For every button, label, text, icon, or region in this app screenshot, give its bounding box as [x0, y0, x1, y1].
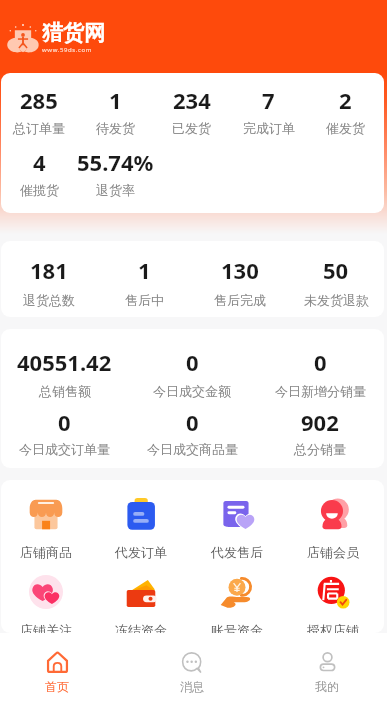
staticText: 234	[173, 85, 211, 115]
staticText: 今日成交订单量	[19, 441, 110, 457]
button[interactable]: 50	[288, 255, 384, 308]
staticText: 0	[314, 347, 327, 377]
button[interactable]: 代发订单	[93, 497, 189, 560]
staticText: www.59ds.com	[42, 46, 92, 54]
button[interactable]: 店铺商品	[1, 497, 93, 560]
button[interactable]: 234	[153, 85, 230, 136]
staticText: 完成订单	[243, 120, 295, 136]
staticText: 店铺商品	[20, 544, 72, 560]
staticText: 1	[109, 85, 122, 115]
staticText: 总销售额	[39, 383, 91, 399]
button[interactable]: 285	[1, 85, 77, 136]
button[interactable]: 902	[256, 407, 384, 457]
button[interactable]: 0	[128, 347, 256, 399]
staticText: 代发售后	[211, 544, 263, 560]
button[interactable]: 7	[230, 85, 307, 136]
button[interactable]: 55.74%	[77, 147, 154, 198]
staticText: 0	[58, 407, 71, 437]
button[interactable]: 1	[77, 85, 153, 136]
staticText: 待发货	[96, 120, 135, 136]
staticText: 总订单量	[13, 120, 65, 136]
staticText: 4	[33, 147, 46, 177]
staticText: 0	[186, 347, 199, 377]
staticText: 退货率	[96, 182, 135, 198]
button[interactable]: 0	[128, 407, 256, 457]
button[interactable]: 首页	[25, 633, 89, 706]
staticText: 我的	[315, 679, 339, 694]
staticText: 2	[339, 85, 352, 115]
staticText: 授权店铺	[307, 622, 359, 633]
staticText: 55.74%	[77, 147, 154, 177]
staticText: 7	[262, 85, 275, 115]
staticText: 181	[30, 255, 68, 285]
staticText: 店铺会员	[307, 544, 359, 560]
staticText: 今日成交商品量	[147, 441, 238, 457]
staticText: 130	[221, 255, 259, 285]
button[interactable]: 店铺关注	[1, 575, 93, 633]
staticText: 今日成交金额	[153, 383, 231, 399]
staticText: 售后中	[125, 292, 164, 308]
button[interactable]: 1	[96, 255, 192, 308]
button[interactable]: 授权店铺	[285, 575, 381, 633]
button[interactable]: 消息	[160, 633, 224, 706]
staticText: 猎货网	[42, 20, 105, 46]
staticText: 已发货	[172, 120, 211, 136]
staticText: 40551.42	[17, 347, 112, 377]
staticText: 285	[20, 85, 58, 115]
button[interactable]: 冻结资金	[93, 575, 189, 633]
staticText: 未发货退款	[304, 292, 369, 308]
staticText: 售后完成	[214, 292, 266, 308]
button[interactable]: 店铺会员	[285, 497, 381, 560]
staticText: 今日新增分销量	[275, 383, 366, 399]
staticText: 催揽货	[20, 182, 59, 198]
staticText: 催发货	[326, 120, 365, 136]
staticText: 冻结资金	[115, 622, 167, 633]
staticText: 50	[323, 255, 349, 285]
button[interactable]: 我的	[295, 633, 359, 706]
button[interactable]: 40551.42	[1, 347, 128, 399]
staticText: 店铺关注	[20, 622, 72, 633]
button[interactable]: 130	[192, 255, 288, 308]
button[interactable]: 181	[1, 255, 96, 308]
button[interactable]: 账号资金	[189, 575, 285, 633]
button[interactable]: 4	[1, 147, 77, 198]
button[interactable]: 0	[256, 347, 384, 399]
button[interactable]: 0	[1, 407, 128, 457]
staticText: 代发订单	[115, 544, 167, 560]
staticText: 首页	[45, 679, 69, 694]
staticText: 902	[301, 407, 339, 437]
staticText: 0	[186, 407, 199, 437]
staticText: 1	[138, 255, 151, 285]
button[interactable]: 代发售后	[189, 497, 285, 560]
staticText: 消息	[180, 679, 204, 694]
button[interactable]: 2	[307, 85, 384, 136]
staticText: 总分销量	[294, 441, 346, 457]
staticText: 账号资金	[211, 622, 263, 633]
staticText: 退货总数	[23, 292, 75, 308]
